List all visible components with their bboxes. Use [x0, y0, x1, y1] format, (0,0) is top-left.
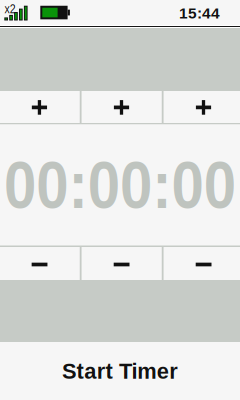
button[interactable]: Increase hours — [0, 91, 80, 123]
button[interactable]: Decrease minutes — [82, 247, 162, 280]
button[interactable]: Increase minutes — [82, 91, 162, 123]
button[interactable]: Decrease seconds — [164, 247, 240, 280]
button[interactable]: Decrease hours — [0, 247, 80, 280]
staticText: 00:00:00 — [0, 148, 240, 222]
button[interactable]: Increase seconds — [164, 91, 240, 123]
staticText: 15:44 — [179, 4, 220, 22]
staticText: Start Timer — [60, 358, 180, 384]
staticText: x2 — [4, 2, 17, 16]
button[interactable]: Start Timer — [0, 342, 240, 400]
